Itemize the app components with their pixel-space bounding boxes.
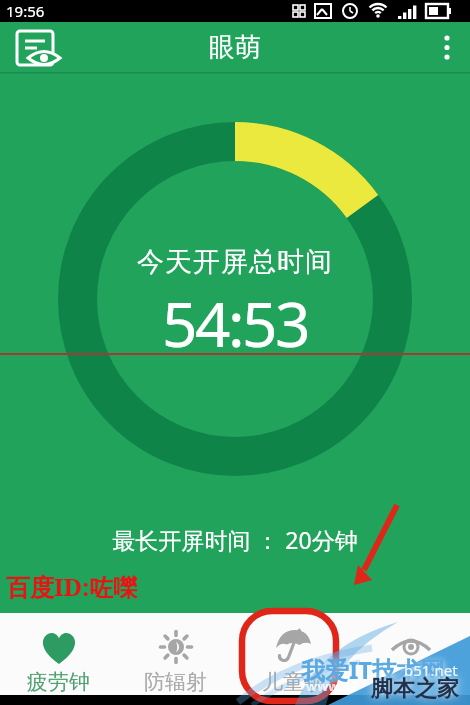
button[interactable]: 疲劳钟: [0, 613, 117, 695]
button[interactable]: 防辐射: [117, 613, 234, 695]
staticText: 脚本之家: [371, 675, 459, 703]
staticText: 眼萌: [0, 31, 470, 64]
staticText: www.52: [306, 677, 358, 695]
staticText: 54:53: [0, 281, 470, 365]
staticText: 疲劳钟: [27, 669, 90, 695]
staticText: b51.net: [404, 660, 458, 680]
staticText: 百度ID:咗嚛: [6, 570, 138, 603]
button[interactable]: [426, 22, 470, 73]
staticText: 最长开屏时间 ： 20分钟: [0, 524, 470, 555]
button[interactable]: 儿童锁: [234, 613, 352, 695]
staticText: 今天开屏总时间: [0, 245, 470, 279]
staticText: 防辐射: [144, 669, 207, 695]
staticText: 19:56: [6, 1, 45, 21]
staticText: 儿童锁: [262, 669, 325, 695]
button[interactable]: [0, 22, 62, 73]
button[interactable]: [352, 613, 470, 695]
staticText: 我爱IT技术网: [301, 653, 445, 686]
